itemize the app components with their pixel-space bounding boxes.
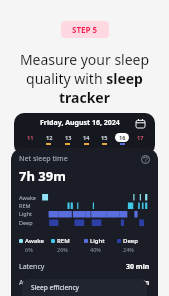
staticText: Deep [123, 237, 138, 245]
button[interactable]: 13 [58, 133, 77, 145]
staticText: Awake [25, 237, 45, 245]
button[interactable]: Awake [19, 237, 51, 253]
staticText: Sleep efficiency [31, 283, 80, 292]
staticText: 11 [27, 134, 34, 141]
staticText: Net sleep time [19, 154, 68, 164]
staticText: REM [19, 202, 31, 209]
button[interactable]: STEP 5 [61, 21, 109, 38]
button[interactable]: Awake mid-sleep [19, 278, 150, 288]
staticText: 6% [25, 246, 33, 253]
staticText: 33 min [126, 278, 150, 288]
staticText: STEP 5 [72, 24, 98, 35]
button[interactable]: Light [84, 237, 117, 253]
staticText: Awake [19, 194, 36, 201]
staticText: 13 [65, 134, 72, 141]
button[interactable]: 16 [113, 133, 131, 145]
staticText: Measure your sleep quality with sleep tr… [0, 50, 169, 107]
button[interactable]: Help [141, 155, 150, 164]
button[interactable]: REM [51, 237, 84, 253]
staticText: Awake mid-sleep [19, 278, 75, 288]
staticText: 15 [101, 134, 108, 141]
button[interactable]: Deep [117, 237, 150, 253]
staticText: 14 [83, 134, 90, 141]
button[interactable]: Latency [19, 262, 150, 272]
staticText: 26% [57, 246, 68, 253]
staticText: Deep [19, 219, 33, 226]
button[interactable]: 17 [131, 133, 149, 143]
staticText: 17 [137, 134, 144, 141]
staticText: 12 [46, 134, 53, 141]
staticText: Light [90, 237, 105, 245]
button[interactable]: 14 [77, 133, 95, 145]
staticText: 40% [90, 246, 101, 253]
button[interactable]: 12 [39, 133, 58, 145]
staticText: 16 [119, 134, 126, 141]
button[interactable]: Sleep efficiency [22, 279, 147, 296]
staticText: 30 min [126, 262, 150, 272]
button[interactable]: Calendar [136, 119, 145, 128]
button[interactable]: 11 [20, 133, 39, 143]
staticText: Latency [19, 262, 45, 272]
staticText: 24% [123, 246, 134, 253]
staticText: REM [57, 237, 70, 245]
button[interactable]: 15 [95, 133, 113, 145]
staticText: Friday, August 16, 2024 [40, 118, 120, 128]
staticText: 7h 39m [19, 167, 66, 185]
staticText: Light [19, 210, 33, 217]
